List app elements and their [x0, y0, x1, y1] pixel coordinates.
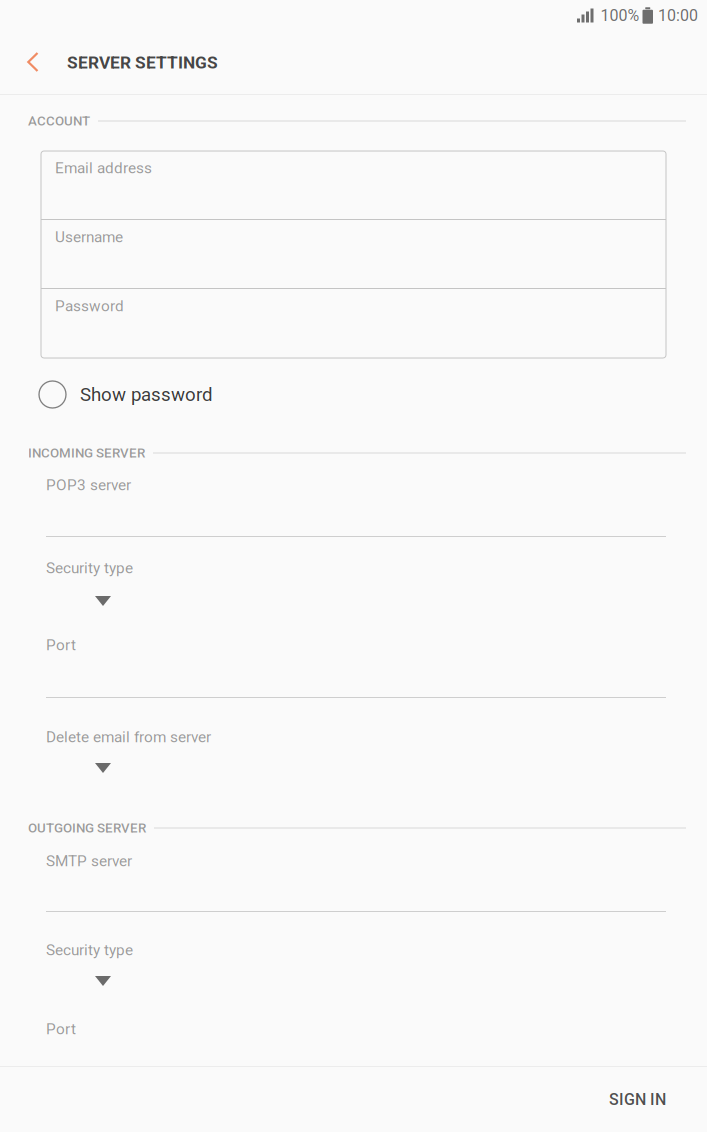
staticText: Show password	[80, 384, 213, 405]
staticText: Password	[55, 297, 124, 315]
staticText: Security type	[46, 559, 133, 577]
button[interactable]: Back	[14, 39, 52, 85]
staticText: Port	[46, 636, 76, 654]
staticText: SMTP server	[46, 852, 132, 870]
staticText: ACCOUNT	[28, 113, 90, 129]
staticText: 10:00	[658, 6, 698, 25]
staticText: 100%	[600, 6, 639, 25]
button[interactable]: SIGN IN	[589, 1074, 686, 1125]
staticText: Username	[55, 228, 123, 246]
button[interactable]: Show password	[0, 358, 707, 429]
staticText: Email address	[55, 159, 152, 177]
staticText: SERVER SETTINGS	[67, 52, 218, 73]
button[interactable]: Security type	[0, 945, 707, 990]
staticText: Port	[46, 1020, 76, 1038]
staticText: POP3 server	[46, 476, 131, 494]
button[interactable]: Delete email from server	[0, 732, 707, 777]
staticText: Delete email from server	[46, 728, 211, 746]
staticText: Security type	[46, 941, 133, 959]
button[interactable]: Security type	[0, 559, 707, 636]
staticText: OUTGOING SERVER	[28, 820, 146, 836]
staticText: SIGN IN	[609, 1090, 666, 1109]
staticText: INCOMING SERVER	[28, 445, 145, 461]
